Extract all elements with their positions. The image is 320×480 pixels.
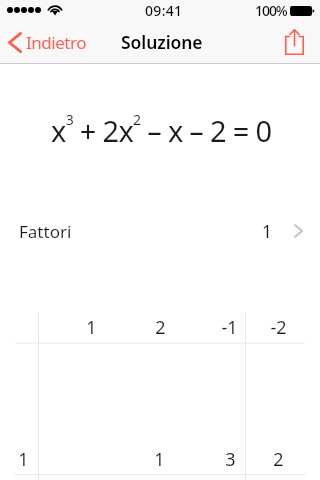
staticText: 2 [273, 447, 284, 469]
button[interactable]: Indietro [0, 25, 96, 60]
staticText: 09:41 [145, 1, 183, 20]
staticText: -1 [221, 315, 238, 337]
staticText: 3 [225, 447, 236, 469]
staticText: 1 [154, 447, 165, 469]
staticText: 2 [155, 315, 166, 337]
staticText: 1 [18, 447, 29, 469]
staticText: Fattori [19, 220, 72, 243]
staticText: Soluzione [121, 30, 203, 54]
staticText: 100% [255, 1, 287, 20]
button[interactable]: Fattori [0, 208, 320, 254]
staticText: 1 [262, 219, 273, 243]
staticText: -2 [270, 315, 287, 337]
staticText: x3 + 2x2 – x – 2 = 0 [51, 110, 272, 150]
staticText: 1 [86, 315, 97, 337]
staticText: Indietro [26, 31, 86, 54]
button[interactable]: Condividi [275, 25, 320, 59]
